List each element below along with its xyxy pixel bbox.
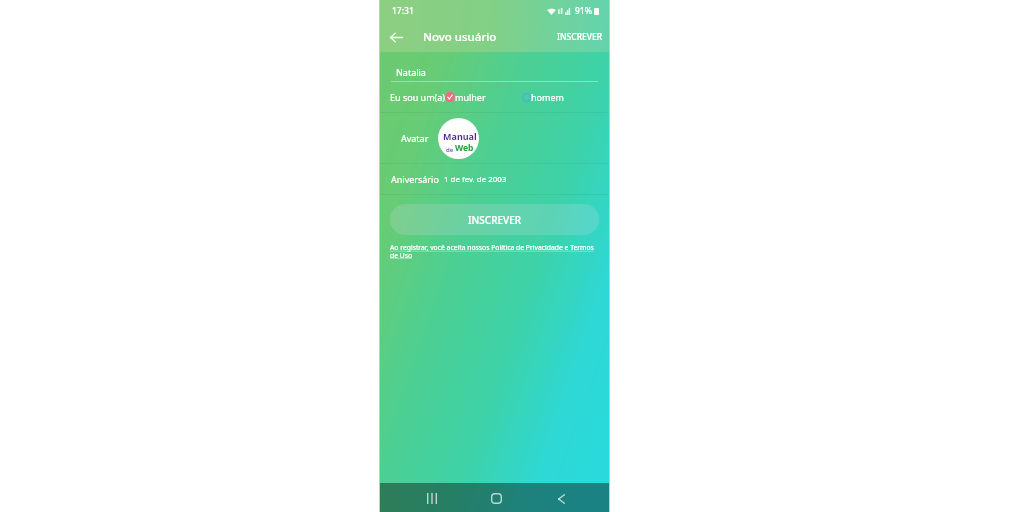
staticText: 91% — [575, 5, 592, 17]
staticText: Avatar — [401, 132, 429, 144]
button[interactable]: Home — [476, 483, 516, 512]
button[interactable]: Aniversário — [380, 164, 609, 194]
button[interactable]: INSCREVER — [551, 24, 609, 50]
staticText: INSCREVER — [468, 213, 522, 227]
button[interactable]: Recent apps — [412, 483, 452, 512]
staticText: mulher — [455, 91, 486, 103]
button[interactable]: Back — [385, 26, 407, 48]
staticText: INSCREVER — [557, 31, 603, 43]
staticText: 17:31 — [392, 5, 414, 17]
staticText: Ao registrar, você aceita nossos Polític… — [390, 243, 600, 260]
staticText: Eu sou um(a) — [390, 91, 445, 103]
staticText: homem — [531, 91, 564, 103]
button[interactable]: homem — [522, 91, 564, 103]
button[interactable]: Back — [541, 483, 581, 512]
staticText: 1 de fev. de 2003 — [444, 174, 507, 185]
button[interactable]: Avatar — [438, 118, 479, 159]
staticText: Natalia — [396, 66, 426, 78]
staticText: Web — [455, 142, 474, 154]
staticText: Manual — [443, 130, 477, 142]
staticText: Novo usuário — [423, 29, 497, 45]
button[interactable]: INSCREVER — [390, 204, 599, 235]
staticText: de — [446, 146, 455, 154]
staticText: Aniversário — [391, 173, 439, 185]
button[interactable]: mulher — [445, 91, 486, 103]
button[interactable]: Ao registrar, você aceita nossos Polític… — [390, 243, 600, 260]
